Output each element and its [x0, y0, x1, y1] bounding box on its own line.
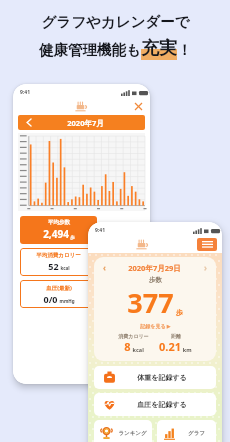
- staticText: 歩: [69, 234, 75, 240]
- button[interactable]: 体重を記録する: [94, 366, 216, 389]
- staticText: ！: [177, 41, 192, 59]
- button[interactable]: Close: [133, 101, 144, 112]
- staticText: 52: [48, 260, 59, 272]
- staticText: 0/0: [43, 293, 58, 305]
- staticText: km: [181, 346, 192, 353]
- staticText: 2,494: [43, 227, 69, 241]
- staticText: 9:41: [95, 227, 105, 234]
- button[interactable]: 平均歩数: [20, 216, 97, 244]
- button[interactable]: 記録を見る ▶: [140, 323, 171, 330]
- staticText: ランキング: [118, 430, 147, 437]
- staticText: 0.21: [159, 339, 181, 354]
- button[interactable]: グラフ: [157, 420, 216, 442]
- staticText: 血圧(最新): [46, 284, 72, 292]
- staticText: 2020年7月: [67, 118, 104, 128]
- staticText: グラフやカレンダーで: [41, 13, 190, 31]
- staticText: 健康管理機能も: [39, 41, 141, 59]
- button[interactable]: 平均消費カロリー: [20, 248, 97, 276]
- staticText: 血圧を記録する: [137, 400, 187, 409]
- staticText: 距離: [171, 333, 181, 339]
- staticText: 377: [127, 284, 174, 321]
- staticText: kcal: [59, 265, 70, 271]
- staticText: 2020年7月29日: [128, 263, 181, 273]
- button[interactable]: 血圧(最新): [20, 280, 97, 308]
- staticText: 平均消費カロリー: [36, 252, 81, 259]
- staticText: グラフ: [188, 430, 205, 437]
- staticText: 歩数: [149, 276, 162, 284]
- staticText: mmHg: [58, 298, 75, 304]
- staticText: 消費カロリー: [118, 333, 149, 339]
- staticText: 8: [124, 339, 131, 354]
- staticText: 歩: [174, 308, 183, 318]
- staticText: 充実: [141, 37, 177, 60]
- staticText: ›: [204, 262, 207, 273]
- staticText: 9:41: [20, 89, 30, 96]
- staticText: kcal: [131, 346, 144, 353]
- button[interactable]: Menu: [197, 238, 217, 251]
- other: Previous month: [26, 119, 33, 126]
- button[interactable]: Previous month: [18, 115, 145, 130]
- button[interactable]: 血圧を記録する: [94, 393, 216, 416]
- staticText: ‹: [103, 262, 106, 273]
- staticText: 平均歩数: [48, 219, 70, 226]
- button[interactable]: ‹: [94, 257, 216, 361]
- button[interactable]: ランキング: [94, 420, 152, 442]
- staticText: 体重を記録する: [137, 373, 187, 382]
